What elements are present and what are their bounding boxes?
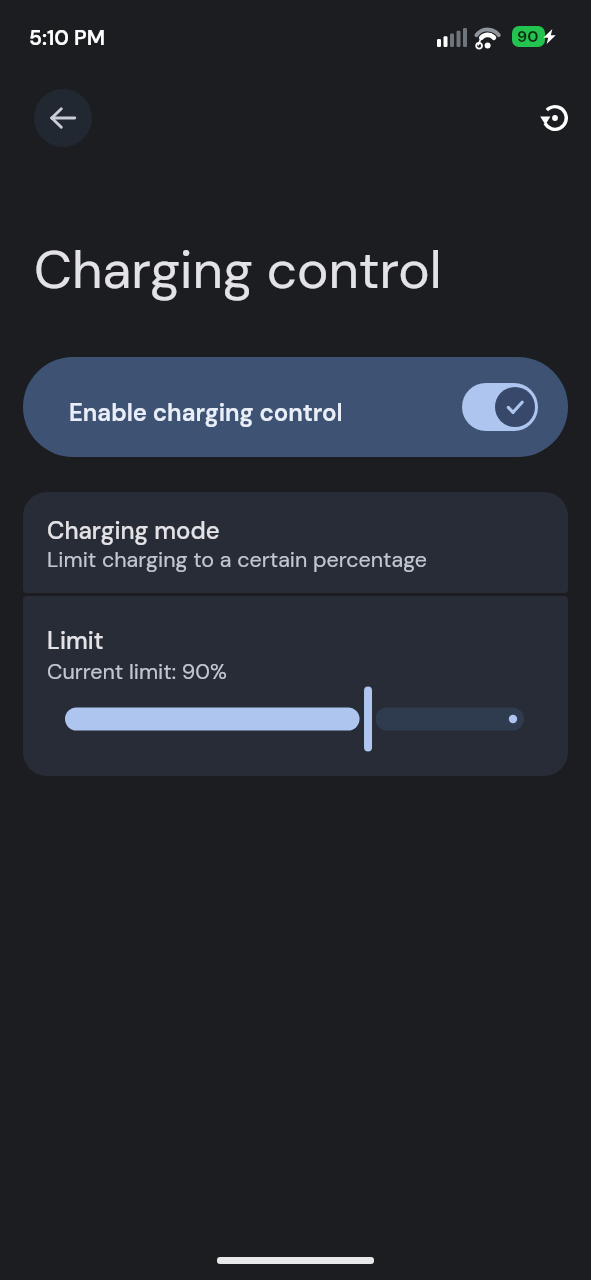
staticText: 90 (517, 26, 539, 47)
button[interactable]: Charge limit slider (65, 687, 524, 751)
staticText: Limit charging to a certain percentage (47, 546, 428, 574)
staticText: Enable charging control (69, 397, 343, 428)
button[interactable]: Navigate back (34, 89, 92, 147)
staticText: Charging mode (47, 515, 220, 546)
button[interactable]: Enable charging control (23, 357, 568, 457)
staticText: 5:10 PM (29, 24, 106, 51)
button[interactable]: Charging mode (23, 492, 568, 593)
staticText: Current limit: 90% (47, 658, 227, 686)
staticText: Limit (47, 625, 104, 656)
button[interactable]: Reset to default (529, 92, 581, 144)
staticText: Charging control (34, 235, 442, 304)
button[interactable]: Enable charging control toggle (462, 383, 538, 431)
